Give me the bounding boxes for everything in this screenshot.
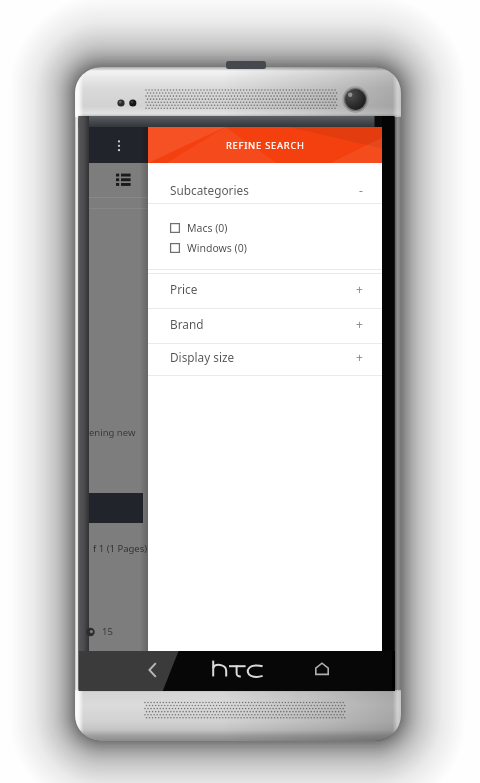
staticText: - — [359, 182, 363, 198]
staticText: + — [356, 281, 363, 297]
button[interactable]: Home — [311, 658, 333, 680]
button[interactable]: Price — [148, 274, 382, 308]
staticText: + — [356, 316, 363, 332]
button[interactable]: Subcategories — [148, 163, 382, 203]
staticText: ening new — [89, 426, 136, 439]
staticText: Display size — [170, 349, 235, 365]
staticText: + — [356, 349, 363, 365]
staticText: f 1 (1 Pages) — [93, 542, 148, 555]
button[interactable]: Back — [142, 659, 164, 681]
button[interactable]: Display size — [148, 344, 382, 375]
other: HTC — [212, 660, 266, 678]
staticText: Price — [170, 281, 198, 297]
button[interactable]: Macs (0) — [148, 218, 382, 238]
staticText: REFINE SEARCH — [226, 139, 305, 152]
staticText: Subcategories — [170, 182, 249, 198]
button[interactable]: REFINE SEARCH — [148, 127, 382, 163]
staticText: 15 — [102, 625, 113, 638]
button[interactable]: Brand — [148, 309, 382, 343]
staticText: Brand — [170, 316, 204, 332]
staticText: Macs (0) — [187, 221, 228, 235]
staticText: Windows (0) — [187, 241, 247, 255]
button[interactable]: Windows (0) — [148, 238, 382, 258]
